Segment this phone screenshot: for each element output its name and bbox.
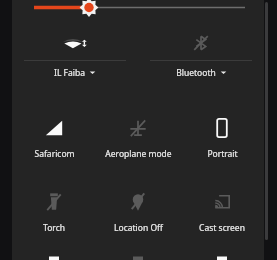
staticText: Cast screen [199, 222, 245, 234]
staticText: Bluetooth [176, 67, 216, 79]
button[interactable]: Bluetooth off [138, 26, 264, 84]
staticText: Location Off [114, 222, 163, 234]
button[interactable]: Portrait [180, 108, 264, 168]
button[interactable]: Safaricom [12, 108, 96, 168]
button[interactable]: Wi-Fi, IL Faiba [12, 26, 138, 84]
staticText: Portrait [207, 148, 238, 160]
staticText: Safaricom [34, 148, 75, 160]
button[interactable]: Cast screen [180, 182, 264, 242]
staticText: Aeroplane mode [105, 148, 172, 160]
button[interactable]: Brightness [12, 0, 264, 18]
button[interactable]: Aeroplane mode [96, 108, 180, 168]
button[interactable]: More quick settings [96, 253, 180, 260]
button[interactable]: Torch [12, 182, 96, 242]
staticText: IL Faiba [54, 67, 85, 79]
staticText: Torch [43, 222, 65, 234]
button[interactable]: Location Off [96, 182, 180, 242]
button[interactable]: More quick settings [12, 253, 96, 260]
button[interactable]: More quick settings [180, 253, 264, 260]
